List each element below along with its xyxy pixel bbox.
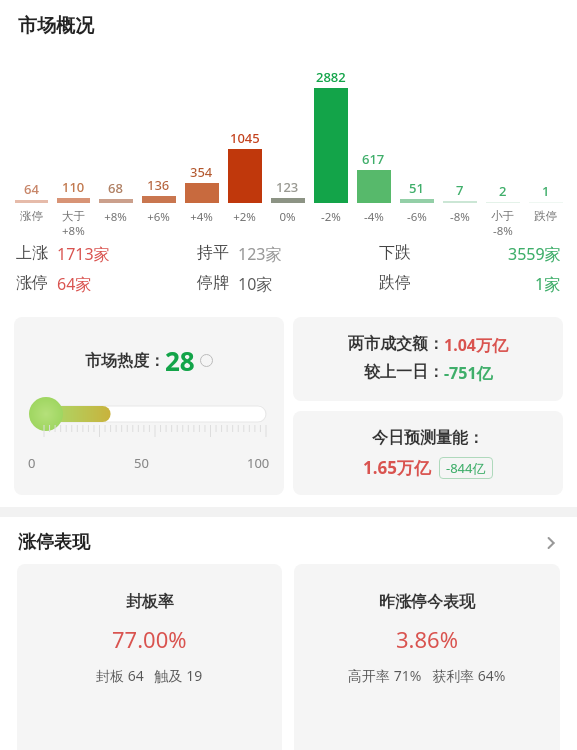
staticText: 今日预测量能： xyxy=(372,428,484,448)
staticText: 高开率 71% 获利率 64% xyxy=(348,666,506,685)
staticText: 昨涨停今表现 xyxy=(379,592,475,612)
staticText: 大于 xyxy=(62,209,85,223)
button[interactable]: 昨涨停今表现 xyxy=(294,564,560,750)
staticText: 50 xyxy=(134,454,149,472)
staticText: 封板 64 触及 19 xyxy=(96,666,203,685)
staticText: 77.00% xyxy=(112,624,187,654)
staticText: 较上一日： xyxy=(364,362,444,382)
staticText: 1家 xyxy=(535,273,561,295)
staticText: +4% xyxy=(190,209,213,225)
staticText: 1 xyxy=(542,182,550,200)
staticText: 上涨 xyxy=(16,243,48,263)
staticText: 3559家 xyxy=(508,243,561,265)
staticText: 涨停 xyxy=(16,273,48,293)
staticText: 跌停 xyxy=(379,273,411,293)
staticText: 2 xyxy=(499,182,507,200)
staticText: 1045 xyxy=(230,129,260,147)
staticText: 617 xyxy=(362,150,385,168)
staticText: 123 xyxy=(276,178,299,196)
staticText: 涨停表现 xyxy=(18,531,90,554)
staticText: 51 xyxy=(409,179,424,197)
staticText: +6% xyxy=(147,209,170,225)
staticText: 100 xyxy=(247,454,270,472)
staticText: 1.04万亿 xyxy=(444,334,508,356)
staticText: 64家 xyxy=(57,273,92,295)
staticText: 28 xyxy=(165,343,195,378)
staticText: 7 xyxy=(456,181,464,199)
staticText: 136 xyxy=(147,176,170,194)
staticText: -844亿 xyxy=(446,459,486,477)
button[interactable]: 封板率 xyxy=(17,564,282,750)
staticText: 0 xyxy=(28,454,36,472)
button[interactable]: 涨停表现 xyxy=(0,517,577,564)
staticText: 下跌 xyxy=(379,243,411,263)
staticText: +2% xyxy=(233,209,256,225)
staticText: 市场概况 xyxy=(18,14,94,38)
staticText: 68 xyxy=(108,179,123,197)
staticText: 停牌 xyxy=(197,273,229,293)
staticText: 123家 xyxy=(238,243,282,265)
staticText: -6% xyxy=(407,209,427,225)
staticText: -2% xyxy=(321,209,341,225)
staticText: 两市成交额： xyxy=(348,334,444,354)
staticText: 3.86% xyxy=(396,624,458,654)
other: 说明 xyxy=(200,354,213,367)
staticText: 0% xyxy=(279,209,296,225)
staticText: 110 xyxy=(62,178,85,196)
staticText: 2882 xyxy=(316,68,346,86)
staticText: 1.65万亿 xyxy=(363,456,431,479)
staticText: 持平 xyxy=(197,243,229,263)
staticText: 涨停 xyxy=(20,209,43,223)
staticText: 小于 xyxy=(491,209,514,223)
staticText: +8% xyxy=(62,223,85,237)
staticText: 市场热度： xyxy=(85,351,165,371)
staticText: 354 xyxy=(190,163,213,181)
staticText: -8% xyxy=(493,223,513,237)
button[interactable]: 今日预测量能： xyxy=(293,411,563,495)
button[interactable]: 市场热度： xyxy=(14,317,284,495)
staticText: 10家 xyxy=(238,273,273,295)
staticText: -751亿 xyxy=(444,362,493,384)
staticText: 64 xyxy=(24,180,39,198)
staticText: 封板率 xyxy=(126,592,174,612)
staticText: 跌停 xyxy=(534,209,557,223)
staticText: +8% xyxy=(104,209,127,225)
staticText: 1713家 xyxy=(57,243,110,265)
staticText: -4% xyxy=(364,209,384,225)
staticText: -8% xyxy=(450,209,470,225)
button[interactable]: 两市成交额： xyxy=(293,317,563,401)
